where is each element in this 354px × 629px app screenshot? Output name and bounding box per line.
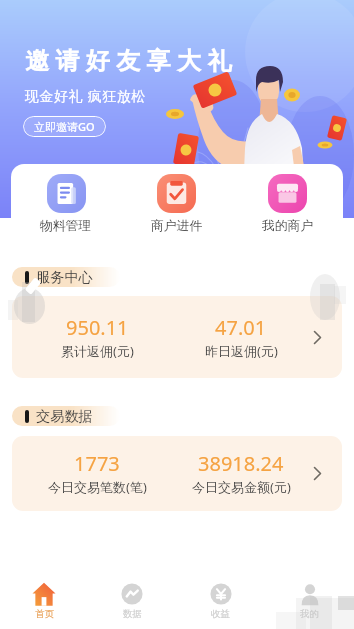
button[interactable]: Profile — [265, 571, 354, 629]
staticText: 昨日返佣(元) — [205, 342, 278, 360]
staticText: 物料管理 — [40, 218, 92, 234]
staticText: 交易数据 — [36, 407, 93, 425]
staticText: 数据 — [123, 608, 142, 620]
staticText: 邀请好友享大礼 — [25, 46, 238, 76]
staticText: 今日交易笔数(笔) — [48, 478, 147, 496]
button[interactable]: 物料管理 — [11, 164, 121, 244]
button[interactable]: Home — [0, 571, 88, 629]
button[interactable]: 我的商户 — [232, 164, 343, 244]
staticText: 今日交易金额(元) — [192, 478, 291, 496]
button[interactable]: Earnings — [176, 571, 265, 629]
staticText: 1773 — [74, 450, 120, 477]
staticText: 现金好礼 疯狂放松 — [25, 86, 147, 105]
staticText: 立即邀请GO — [34, 119, 95, 134]
button[interactable]: 950.11 — [12, 296, 342, 378]
staticText: 收益 — [211, 608, 230, 620]
staticText: 47.01 — [215, 314, 267, 341]
button[interactable]: 商户进件 — [121, 164, 232, 244]
staticText: 首页 — [35, 608, 54, 620]
staticText: 我的 — [300, 608, 319, 620]
staticText: 商户进件 — [151, 218, 203, 234]
button[interactable]: 1773 — [12, 436, 342, 511]
staticText: 38918.24 — [198, 450, 284, 477]
staticText: 累计返佣(元) — [61, 342, 134, 360]
staticText: 服务中心 — [36, 268, 93, 286]
button[interactable]: 立即邀请GO — [23, 116, 106, 137]
staticText: 我的商户 — [262, 218, 314, 234]
staticText: 950.11 — [66, 314, 129, 341]
button[interactable]: Data — [88, 571, 176, 629]
